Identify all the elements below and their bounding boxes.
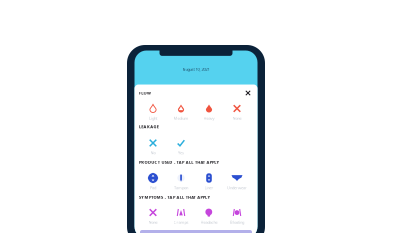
button[interactable]: Close — [244, 89, 252, 97]
button[interactable]: No — [139, 137, 167, 155]
staticText: LEAKAGE — [139, 124, 159, 129]
button[interactable]: Liner — [195, 172, 223, 190]
staticText: Tampon — [174, 185, 188, 190]
button[interactable]: Cramps — [167, 207, 195, 225]
staticText: Headache — [200, 219, 217, 225]
button[interactable] — [140, 230, 252, 233]
staticText: Pad — [150, 185, 156, 190]
button[interactable]: Tampon — [167, 172, 195, 190]
staticText: Liner — [204, 185, 213, 190]
button[interactable]: Headache — [195, 207, 223, 225]
button[interactable]: Yes — [167, 137, 195, 155]
button[interactable]: Medium — [167, 103, 195, 121]
staticText: Medium — [173, 115, 188, 121]
staticText: No — [150, 150, 155, 155]
staticText: Cramps — [173, 219, 188, 225]
staticText: FLOW — [139, 90, 151, 96]
button[interactable]: None — [139, 207, 167, 225]
button[interactable]: Underwear — [223, 172, 251, 190]
button[interactable]: Heavy — [195, 103, 223, 121]
staticText: Light — [149, 115, 157, 121]
button[interactable]: Bloating — [223, 207, 251, 225]
staticText: Underwear — [227, 185, 247, 190]
staticText: PRODUCT USED - TAP ALL THAT APPLY — [139, 159, 220, 165]
button[interactable]: Pad — [139, 172, 167, 190]
staticText: Yes — [178, 150, 184, 155]
staticText: Bloating — [230, 219, 244, 225]
staticText: August 10, 2021 — [182, 66, 209, 72]
staticText: SYMPTOMS - TAP ALL THAT APPLY — [139, 194, 210, 200]
staticText: None — [232, 115, 241, 121]
button[interactable]: Light — [139, 103, 167, 121]
staticText: None — [148, 219, 157, 225]
staticText: Heavy — [203, 115, 214, 121]
button[interactable]: None — [223, 103, 251, 121]
